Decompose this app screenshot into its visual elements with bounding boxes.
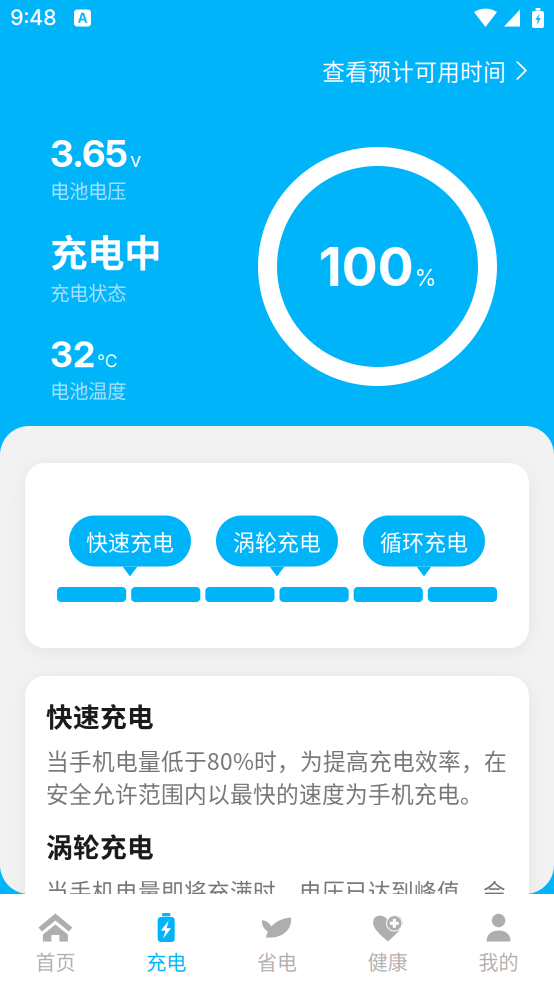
staticText: 首页 <box>35 947 75 976</box>
staticText: 我的 <box>479 947 519 976</box>
staticText: A <box>77 10 87 26</box>
staticText: v <box>130 148 141 172</box>
staticText: 充电状态 <box>50 278 126 306</box>
staticText: 查看预计可用时间 <box>322 54 506 87</box>
button[interactable]: 充电 <box>111 894 222 985</box>
staticText: % <box>414 264 436 291</box>
staticText: 充电 <box>146 947 186 976</box>
staticText: 32 <box>50 332 95 376</box>
staticText: 100 <box>318 234 413 299</box>
staticText: 电池电压 <box>50 176 126 204</box>
button[interactable]: 查看预计可用时间 <box>304 42 554 99</box>
staticText: ℃ <box>97 350 117 371</box>
staticText: 3.65 <box>50 131 128 176</box>
staticText: 循环充电 <box>380 525 468 557</box>
staticText: 当手机电量即将充满时，电压已达到峰值，会只 <box>46 874 506 939</box>
button[interactable]: 涡轮充电 <box>216 516 338 576</box>
staticText: 快速充电 <box>86 525 174 557</box>
button[interactable]: 首页 <box>0 894 111 985</box>
button[interactable]: 快速充电 <box>69 516 191 576</box>
staticText: 电池温度 <box>50 376 126 404</box>
staticText: 快速充电 <box>46 696 154 735</box>
staticText: 涡轮充电 <box>46 826 154 865</box>
button[interactable]: 循环充电 <box>363 516 485 576</box>
staticText: 省电 <box>257 947 297 976</box>
staticText: 9:48 <box>10 5 56 30</box>
button[interactable]: 健康 <box>332 894 443 985</box>
staticText: 当手机电量低于80%时，为提高充电效率，在安全允许范围内以最快的速度为手机充电。 <box>46 744 507 809</box>
button[interactable]: 我的 <box>443 894 554 985</box>
button[interactable]: 省电 <box>222 894 332 985</box>
staticText: 涡轮充电 <box>233 525 321 557</box>
staticText: 充电中 <box>50 224 161 278</box>
staticText: 健康 <box>368 947 408 976</box>
